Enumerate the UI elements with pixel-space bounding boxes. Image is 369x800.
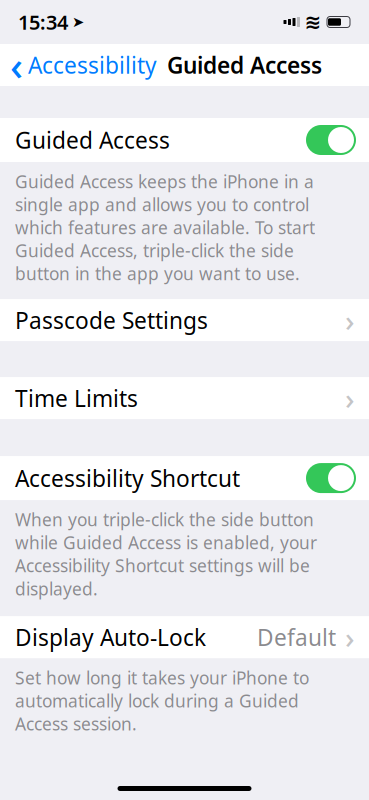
button[interactable]: Accessibility Shortcut — [0, 456, 369, 500]
staticText: ‹ — [10, 38, 23, 91]
staticText: Time Limits — [15, 383, 138, 413]
button[interactable]: Passcode Settings — [0, 299, 369, 341]
staticText: Set how long it takes your iPhone to aut… — [15, 666, 309, 735]
staticText: Accessibility — [28, 50, 157, 80]
staticText: › — [345, 379, 355, 418]
staticText: › — [345, 618, 355, 657]
button[interactable]: Guided Access — [0, 118, 369, 162]
staticText: Accessibility Shortcut — [15, 463, 240, 493]
staticText: Default — [257, 622, 336, 652]
staticText: ➤ — [72, 14, 84, 30]
button[interactable]: Time Limits — [0, 377, 369, 419]
staticText: › — [345, 301, 355, 340]
staticText: Guided Access keeps the iPhone in a sing… — [15, 170, 315, 285]
staticText: 15:34 — [18, 9, 68, 35]
staticText: Display Auto-Lock — [15, 622, 206, 652]
button[interactable]: Display Auto-Lock — [0, 616, 369, 658]
button[interactable]: ‹ — [0, 43, 161, 87]
staticText: Guided Access — [15, 125, 170, 155]
staticText: When you triple-click the side button wh… — [15, 508, 317, 600]
staticText: ≋ — [304, 11, 321, 33]
staticText: Guided Access — [167, 50, 322, 80]
staticText: Passcode Settings — [15, 305, 208, 335]
